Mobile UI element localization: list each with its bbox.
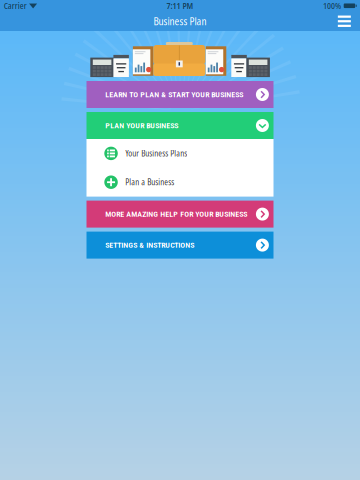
staticText: Plan a Business [125, 177, 174, 188]
staticText: SETTINGS & INSTRUCTIONS [105, 240, 194, 250]
staticText: 7:11 PM [167, 0, 194, 11]
staticText: Carrier [4, 0, 27, 11]
staticText: PLAN YOUR BUSINESS [105, 121, 178, 130]
button[interactable]: MORE AMAZING HELP FOR YOUR BUSINESS [86, 201, 273, 228]
staticText: 100% [323, 0, 341, 11]
button[interactable]: Plan a Business [86, 168, 273, 197]
staticText: MORE AMAZING HELP FOR YOUR BUSINESS [105, 209, 247, 219]
button[interactable]: LEARN TO PLAN & START YOUR BUSINESS [86, 81, 273, 108]
button[interactable]: Your Business Plans [86, 139, 273, 168]
button[interactable]: SETTINGS & INSTRUCTIONS [86, 232, 273, 259]
button[interactable]: Menu [329, 11, 360, 31]
staticText: LEARN TO PLAN & START YOUR BUSINESS [105, 90, 243, 99]
button[interactable]: PLAN YOUR BUSINESS [86, 112, 273, 139]
staticText: Your Business Plans [125, 148, 187, 159]
staticText: Business Plan [153, 14, 206, 28]
